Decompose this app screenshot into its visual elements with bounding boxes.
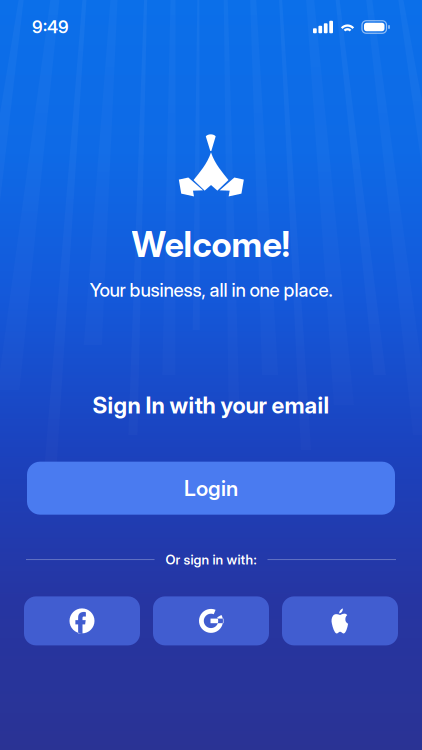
staticText: Or sign in with: bbox=[165, 552, 256, 567]
button[interactable]: Sign in with Facebook bbox=[24, 596, 140, 645]
staticText: Sign In with your email bbox=[92, 392, 329, 419]
button[interactable]: Login bbox=[27, 462, 395, 515]
staticText: Your business, all in one place. bbox=[89, 279, 332, 301]
button[interactable]: Sign in with Google bbox=[153, 596, 269, 645]
staticText: Login bbox=[184, 476, 238, 501]
staticText: Welcome! bbox=[131, 224, 290, 265]
staticText: 9:49 bbox=[32, 17, 69, 37]
button[interactable]: Sign in with Apple bbox=[282, 596, 398, 645]
